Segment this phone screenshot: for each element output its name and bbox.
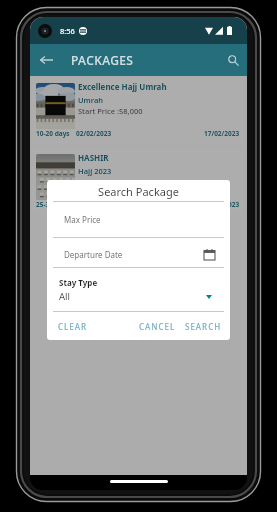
- button[interactable]: Search: [221, 48, 245, 72]
- button[interactable]: Pick date: [202, 247, 216, 261]
- button[interactable]: SEARCH: [182, 317, 225, 336]
- staticText: HASHIR: [78, 152, 109, 163]
- staticText: SEARCH: [185, 321, 222, 332]
- staticText: Start Price :58,000: [78, 106, 143, 116]
- staticText: 25/03/2023: [204, 200, 240, 209]
- staticText: Umrah: [78, 95, 104, 105]
- button[interactable]: Back: [34, 48, 58, 72]
- staticText: 02/02/2023: [76, 129, 112, 138]
- staticText: Max Price: [64, 214, 101, 225]
- button[interactable]: Home: [110, 480, 168, 483]
- staticText: All: [59, 290, 70, 303]
- staticText: Stay Type: [59, 277, 98, 288]
- staticText: PACKAGES: [71, 52, 134, 68]
- staticText: CANCEL: [139, 321, 176, 332]
- staticText: Hajj 2023: [78, 166, 112, 176]
- staticText: Excellence Hajj Umrah: [78, 81, 167, 92]
- button[interactable]: CLEAR: [55, 317, 91, 336]
- staticText: 01/03/2023: [76, 200, 112, 209]
- staticText: 17/02/2023: [204, 129, 240, 138]
- button[interactable]: Excellence Hajj Umrah: [32, 79, 243, 143]
- staticText: Search Package: [47, 184, 230, 199]
- staticText: Start Price :250,000: [78, 177, 147, 187]
- staticText: CLEAR: [58, 321, 88, 332]
- button[interactable]: HASHIR: [32, 150, 243, 214]
- button[interactable]: CANCEL: [136, 317, 179, 336]
- staticText: 25-30 days: [36, 200, 70, 209]
- staticText: 8:56: [60, 26, 75, 36]
- staticText: Departure Date: [64, 249, 123, 260]
- staticText: 10-20 days: [36, 129, 70, 138]
